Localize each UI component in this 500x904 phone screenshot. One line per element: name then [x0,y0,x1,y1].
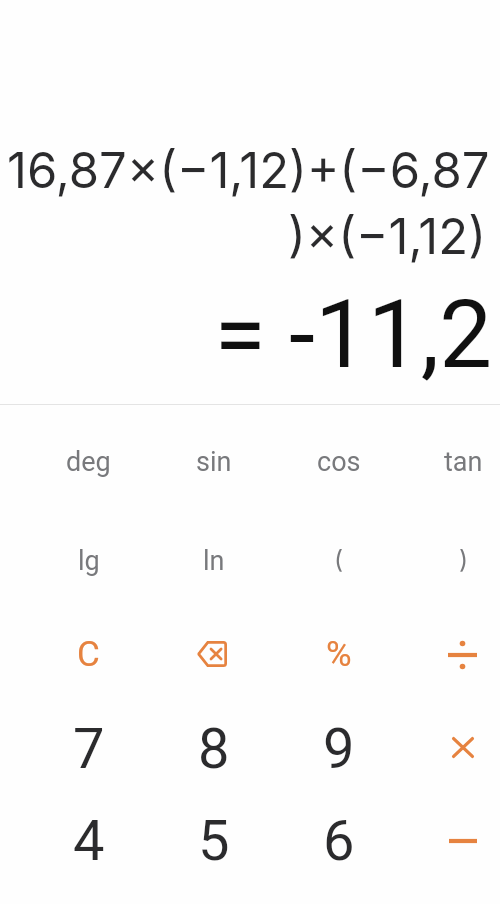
staticText: tan [444,446,483,478]
button[interactable]: Backspace [151,608,276,701]
staticText: )×(−1,12) [0,207,486,266]
button[interactable]: ln [151,514,276,607]
staticText: 5 [198,808,230,874]
button[interactable]: Percent [276,608,401,701]
button[interactable]: deg [26,415,151,508]
staticText: ln [203,545,225,577]
button[interactable]: Divide [401,608,500,701]
button[interactable]: cos [276,415,401,508]
button[interactable]: 9 [276,702,401,795]
staticText: 4 [73,808,105,874]
button[interactable]: Close bracket [401,514,500,607]
button[interactable]: 8 [151,702,276,795]
button[interactable]: Clear [26,608,151,701]
button[interactable]: sin [151,415,276,508]
staticText: cos [317,446,361,478]
staticText: 16,87×(−1,12)+(−6,87 [7,141,490,200]
button[interactable]: 5 [151,794,276,887]
staticText: lg [78,545,100,577]
button[interactable]: 4 [26,794,151,887]
staticText: 6 [323,808,355,874]
button[interactable]: tan [401,415,500,508]
staticText: 9 [323,716,355,782]
button[interactable]: 7 [26,702,151,795]
staticText: sin [196,446,232,478]
button[interactable]: Subtract [401,794,500,887]
staticText: % [326,634,352,675]
button[interactable]: Multiply [401,702,500,795]
staticText: 8 [198,716,230,782]
staticText: ) [459,544,469,574]
button[interactable]: lg [26,514,151,607]
staticText: C [77,634,100,675]
button[interactable]: Open bracket [276,514,401,607]
staticText: deg [66,446,111,478]
button[interactable]: 6 [276,794,401,887]
staticText: 7 [73,716,105,782]
staticText: ( [334,544,344,574]
staticText: = -11,2 [0,280,492,390]
